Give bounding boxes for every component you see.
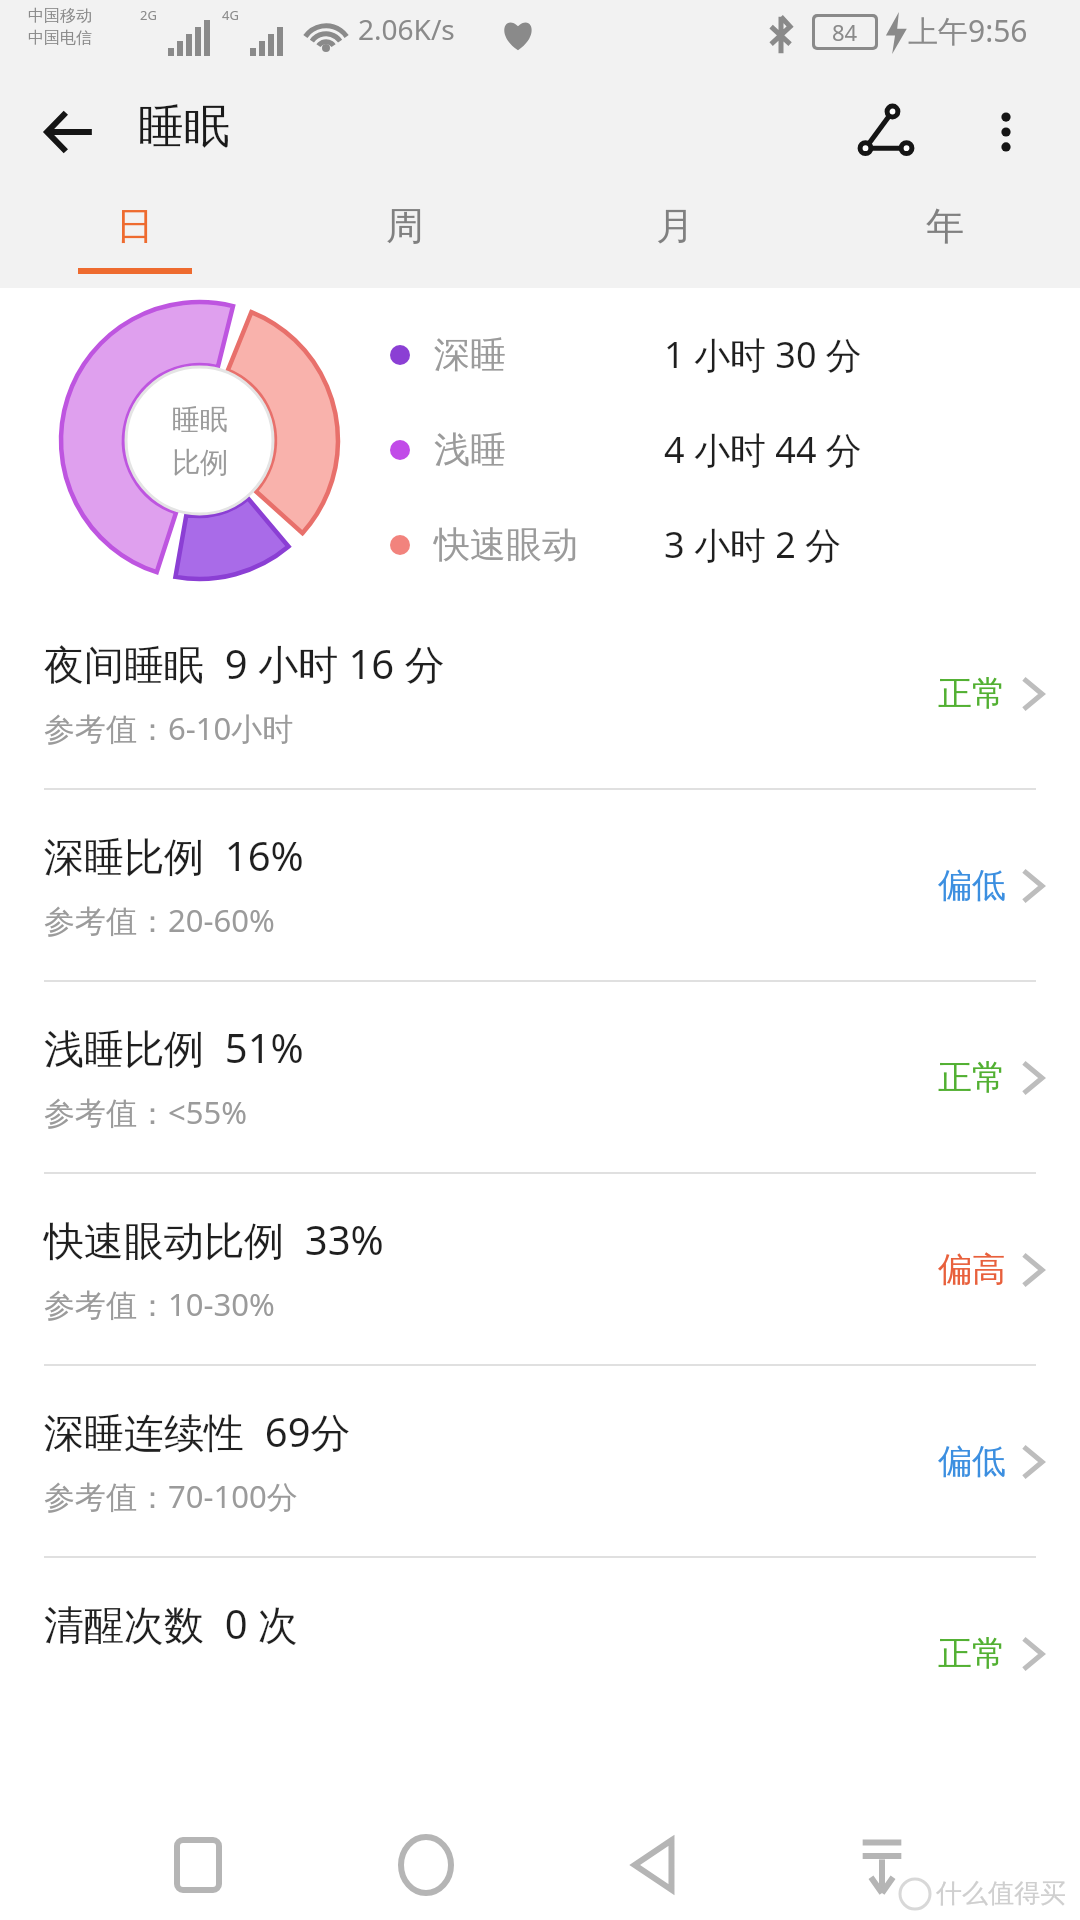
staticText: 正常 [938, 1056, 1006, 1099]
staticText: 参考值：20-60% [44, 899, 275, 941]
staticText: 日 [116, 202, 154, 250]
button[interactable]: 清醒次数 0 次 [0, 1558, 1080, 1748]
staticText: 偏低 [938, 1440, 1006, 1483]
button[interactable]: Home [378, 1817, 474, 1913]
button[interactable]: 周 [270, 190, 540, 288]
staticText: 4 小时 44 分 [664, 425, 862, 474]
staticText: 参考值：6-10小时 [44, 707, 294, 749]
button[interactable]: 夜间睡眠 9 小时 16 分 [0, 598, 1080, 788]
staticText: 2.06K/s [358, 10, 455, 48]
button[interactable]: Back [606, 1817, 702, 1913]
staticText: 参考值：10-30% [44, 1283, 275, 1325]
button[interactable]: More options [962, 88, 1050, 176]
staticText: 年 [926, 202, 964, 250]
button[interactable]: Hide [834, 1817, 930, 1913]
staticText: 4G [222, 6, 239, 24]
staticText: 快速眼动比例 33% [44, 1212, 384, 1267]
staticText: 2G [140, 6, 157, 24]
staticText: 正常 [938, 672, 1006, 715]
button[interactable]: 月 [540, 190, 810, 288]
button[interactable]: Recent apps [150, 1817, 246, 1913]
staticText: 中国电信 [28, 28, 92, 48]
staticText: 偏高 [938, 1248, 1006, 1291]
staticText: 浅睡比例 51% [44, 1020, 304, 1075]
button[interactable]: 深睡连续性 69分 [0, 1366, 1080, 1556]
staticText: 84 [832, 17, 858, 47]
button[interactable]: Share [842, 88, 930, 176]
staticText: 睡眠 [172, 402, 228, 437]
staticText: 周 [386, 202, 424, 250]
button[interactable]: 浅睡比例 51% [0, 982, 1080, 1172]
staticText: 夜间睡眠 9 小时 16 分 [44, 636, 445, 691]
button[interactable]: 深睡比例 16% [0, 790, 1080, 980]
staticText: 正常 [938, 1632, 1006, 1675]
staticText: 1 小时 30 分 [664, 330, 862, 379]
staticText: 上午9:56 [908, 10, 1028, 51]
staticText: 偏低 [938, 864, 1006, 907]
staticText: 快速眼动 [434, 522, 664, 567]
staticText: 比例 [172, 445, 228, 480]
staticText: 3 小时 2 分 [664, 520, 842, 569]
staticText: 浅睡 [434, 427, 664, 472]
staticText: 深睡连续性 69分 [44, 1404, 351, 1459]
staticText: 清醒次数 0 次 [44, 1596, 299, 1651]
staticText: 中国移动 [28, 6, 92, 26]
staticText: 深睡比例 16% [44, 828, 304, 883]
button[interactable]: 快速眼动比例 33% [0, 1174, 1080, 1364]
button[interactable]: Back [28, 90, 112, 174]
staticText: 什么值得买 [936, 1877, 1066, 1910]
staticText: 月 [656, 202, 694, 250]
button[interactable]: 日 [0, 190, 270, 288]
staticText: 参考值：<55% [44, 1091, 247, 1133]
staticText: 参考值：70-100分 [44, 1475, 298, 1517]
staticText: 睡眠 [138, 98, 230, 156]
button[interactable]: 年 [810, 190, 1080, 288]
staticText: 深睡 [434, 332, 664, 377]
